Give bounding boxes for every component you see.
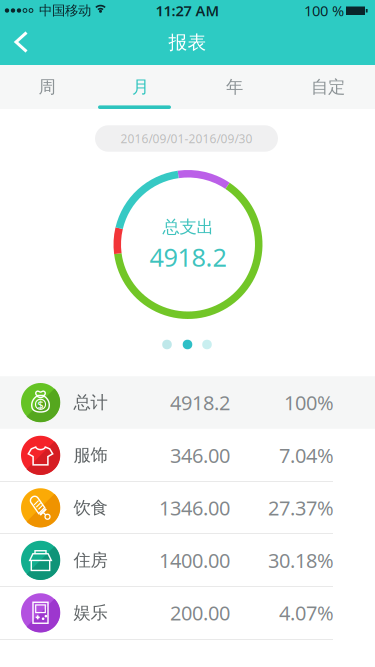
staticText: 饮食 [73,497,107,518]
staticText: 30.18% [268,547,334,574]
staticText: 100 % [304,1,344,20]
staticText: 服饰 [73,445,107,466]
staticText: 报表 [168,31,206,54]
staticText: 27.37% [268,494,334,521]
staticText: 2016/09/01-2016/09/30 [120,130,252,146]
staticText: 月 [132,76,149,98]
staticText: 7.04% [279,442,334,469]
staticText: 4918.2 [170,389,230,416]
staticText: 中国移动 [39,2,91,19]
button[interactable] [0,21,44,62]
staticText: 4918.2 [149,240,226,274]
button[interactable]: 周 [0,65,94,109]
button[interactable]: 2016/09/01-2016/09/30 [95,125,278,152]
staticText: 总计 [73,392,107,413]
button[interactable]: 自定 [281,65,375,109]
staticText: 1346.00 [159,494,230,521]
button[interactable]: 娱乐 [0,586,375,639]
button[interactable]: 年 [187,65,281,109]
staticText: 11:27 AM [155,1,219,20]
staticText: 200.00 [170,599,230,626]
button[interactable]: 住房 [0,534,375,586]
button[interactable]: 月 [94,65,187,109]
staticText: 4.07% [279,599,334,626]
staticText: 1400.00 [159,547,230,574]
staticText: 100% [284,389,334,416]
button[interactable]: 饮食 [0,481,375,534]
staticText: 346.00 [170,442,230,469]
staticText: $ [37,397,43,411]
staticText: 周 [38,76,55,98]
button[interactable]: 服饰 [0,429,375,481]
staticText: 娱乐 [73,602,107,623]
button[interactable]: $ [0,376,375,429]
staticText: 总支出 [162,216,213,238]
staticText: 自定 [311,76,345,98]
staticText: 住房 [73,550,107,571]
staticText: 年 [226,76,243,98]
